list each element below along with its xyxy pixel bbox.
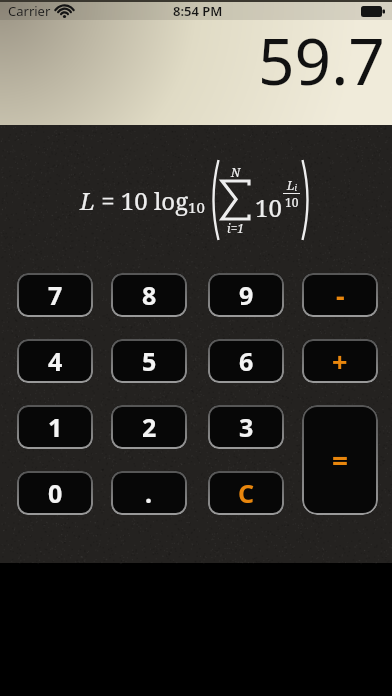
staticText: 0 — [48, 476, 63, 510]
staticText: 10 — [255, 191, 282, 224]
staticText: 7 — [48, 278, 63, 312]
button[interactable]: 3 — [208, 405, 284, 449]
button[interactable]: 9 — [208, 273, 284, 317]
staticText: C — [238, 476, 255, 510]
staticText: 3 — [239, 410, 254, 444]
staticText: i=1 — [227, 220, 245, 236]
button[interactable]: 0 — [17, 471, 93, 515]
staticText: L = 10 log10 — [80, 184, 205, 217]
staticText: 2 — [142, 410, 157, 444]
staticText: 8 — [142, 278, 157, 312]
button[interactable]: C — [208, 471, 284, 515]
staticText: 1 — [48, 410, 63, 444]
button[interactable]: 2 — [111, 405, 187, 449]
staticText: 4 — [48, 344, 63, 378]
button[interactable]: 5 — [111, 339, 187, 383]
staticText: + — [332, 343, 348, 380]
staticText: 8:54 PM — [173, 2, 223, 20]
button[interactable]: 7 — [17, 273, 93, 317]
button[interactable]: 1 — [17, 405, 93, 449]
button[interactable]: 8 — [111, 273, 187, 317]
staticText: . — [145, 476, 153, 510]
staticText: - — [336, 277, 345, 314]
staticText: 10 — [285, 194, 299, 210]
staticText: 5 — [142, 344, 157, 378]
staticText: 9 — [239, 278, 254, 312]
button[interactable]: 6 — [208, 339, 284, 383]
staticText: 59.7 — [258, 17, 385, 104]
staticText: Li — [287, 177, 297, 193]
button[interactable]: = — [302, 405, 378, 515]
staticText: N — [231, 164, 241, 180]
button[interactable]: + — [302, 339, 378, 383]
button[interactable]: . — [111, 471, 187, 515]
staticText: 6 — [239, 344, 254, 378]
staticText: Carrier — [8, 2, 51, 20]
staticText: = — [332, 441, 349, 479]
button[interactable]: 4 — [17, 339, 93, 383]
button[interactable]: - — [302, 273, 378, 317]
